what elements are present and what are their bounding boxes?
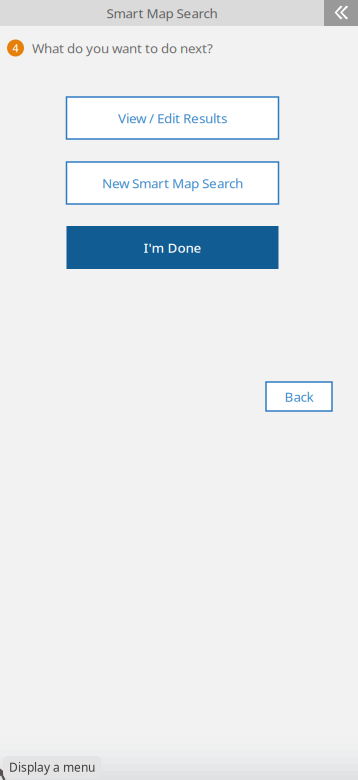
button[interactable]: I'm Done — [66, 226, 278, 269]
button[interactable]: View / Edit Results — [66, 97, 278, 139]
staticText: Smart Map Search — [106, 4, 217, 22]
button[interactable]: New Smart Map Search — [66, 162, 278, 204]
staticText: What do you want to do next? — [32, 39, 213, 57]
button[interactable]: Collapse panel — [324, 0, 358, 26]
staticText: Display a menu — [9, 759, 95, 775]
staticText: Back — [284, 388, 313, 405]
staticText: New Smart Map Search — [102, 174, 243, 192]
staticText: I'm Done — [143, 239, 201, 256]
staticText: 4 — [12, 41, 18, 55]
staticText: View / Edit Results — [118, 109, 227, 127]
button[interactable]: Back — [266, 382, 332, 411]
